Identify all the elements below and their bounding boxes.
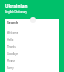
staticText: Sorry xyxy=(7,66,14,70)
button[interactable]: Please xyxy=(5,57,59,64)
button[interactable]: Sorry xyxy=(5,64,59,71)
staticText: Hello xyxy=(7,38,14,42)
staticText: English Dictionary xyxy=(5,10,27,14)
staticText: Goodbye xyxy=(7,52,18,56)
button[interactable]: Goodbye xyxy=(5,50,59,57)
button[interactable]: Search xyxy=(30,17,36,23)
staticText: Ukrainian xyxy=(5,3,28,9)
staticText: Thanks xyxy=(7,45,16,49)
button[interactable]: Hello xyxy=(5,36,59,43)
button[interactable]: Thanks xyxy=(5,43,59,50)
staticText: Search xyxy=(7,20,19,25)
staticText: Welcome xyxy=(7,31,19,35)
button[interactable]: Welcome xyxy=(5,29,59,36)
staticText: Please xyxy=(7,59,15,63)
